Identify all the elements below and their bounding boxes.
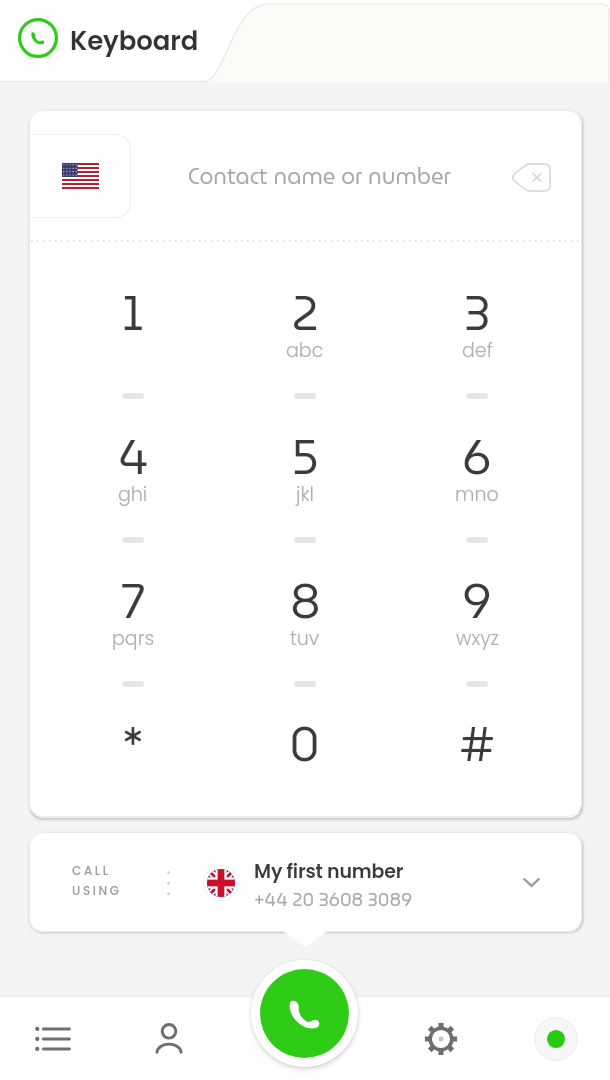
button[interactable]: Recents (26, 1011, 82, 1067)
staticText: 9 (462, 563, 492, 635)
button[interactable]: 9 (387, 547, 567, 679)
button[interactable]: 5 (215, 403, 395, 535)
button[interactable]: Status (528, 1011, 584, 1067)
button[interactable]: CALL (29, 832, 582, 932)
staticText: 2 (292, 275, 319, 347)
staticText: 3 (464, 275, 491, 347)
staticText: 6 (462, 419, 492, 491)
button[interactable]: 4 (43, 403, 223, 535)
staticText: +44 20 3608 3089 (254, 885, 413, 914)
staticText: 0 (289, 706, 321, 778)
button[interactable]: # (387, 690, 567, 817)
staticText: Keyboard (70, 23, 199, 59)
staticText: Contact name or number (188, 159, 451, 194)
button[interactable]: 6 (387, 403, 567, 535)
button[interactable]: Contacts (141, 1011, 197, 1067)
staticText: def (462, 337, 493, 364)
staticText: # (460, 706, 495, 778)
staticText: * (122, 706, 144, 778)
staticText: jkl (296, 481, 314, 508)
button[interactable]: Call (260, 969, 349, 1058)
button[interactable]: 1 (43, 259, 223, 391)
staticText: 7 (121, 563, 146, 635)
button[interactable]: 0 (215, 690, 395, 817)
button[interactable]: * (43, 690, 223, 817)
staticText: pqrs (112, 625, 155, 652)
staticText: 8 (290, 563, 321, 635)
button[interactable]: Backspace (507, 153, 555, 201)
staticText: tuv (290, 625, 320, 652)
staticText: mno (455, 481, 499, 508)
staticText: 1 (122, 275, 144, 347)
staticText: USING (72, 882, 122, 899)
staticText: CALL (72, 862, 111, 879)
button[interactable]: Settings (413, 1011, 469, 1067)
button[interactable]: 7 (43, 547, 223, 679)
staticText: 5 (292, 419, 319, 491)
staticText: abc (286, 337, 324, 364)
button[interactable]: 8 (215, 547, 395, 679)
staticText: 4 (118, 419, 149, 491)
button[interactable]: 2 (215, 259, 395, 391)
button[interactable]: 3 (387, 259, 567, 391)
staticText: wxyz (456, 625, 499, 652)
staticText: ghi (118, 481, 148, 508)
button[interactable]: Select country (30, 134, 131, 218)
staticText: My first number (254, 858, 404, 885)
button[interactable]: Change number (509, 860, 553, 904)
